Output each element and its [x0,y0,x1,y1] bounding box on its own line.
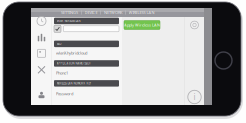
button[interactable]: DEVICE [84,10,97,15]
staticText: WIRELESS LAN [128,10,154,15]
button[interactable]: WIRELESS LAN [128,10,154,15]
button[interactable]: SETTINGS [61,10,78,15]
staticText: NETWORK [104,10,122,15]
button[interactable]: Help [187,89,202,104]
button[interactable]: Adjust [36,32,47,43]
button[interactable]: Apply Wireless LAN [124,20,160,29]
staticText: wlanX-hybridcloud [56,50,87,56]
button[interactable]: Account [36,89,47,100]
button[interactable]: Home [215,52,232,69]
staticText: APPLICATION NAME (SSID) [56,62,90,65]
staticText: Phone1 [56,70,68,76]
staticText: SSID [56,42,61,46]
button[interactable]: Images [36,48,47,59]
staticText: ENTER WIRELESS LAN [56,19,80,23]
button[interactable]: NETWORK [104,10,122,15]
staticText: SETTINGS [61,10,78,15]
button[interactable]: Refresh [36,15,47,26]
button[interactable]: Settings [190,20,199,29]
button[interactable]: Tools [36,64,47,75]
staticText: Apply Wireless LAN [124,22,160,28]
staticText: DEVICE [84,10,97,15]
button[interactable]: Enable wireless LAN [54,25,61,32]
staticText: WIRELESS LAN NETWORK KEY [56,82,91,85]
staticText: i [193,92,195,102]
staticText: Password [56,91,73,96]
